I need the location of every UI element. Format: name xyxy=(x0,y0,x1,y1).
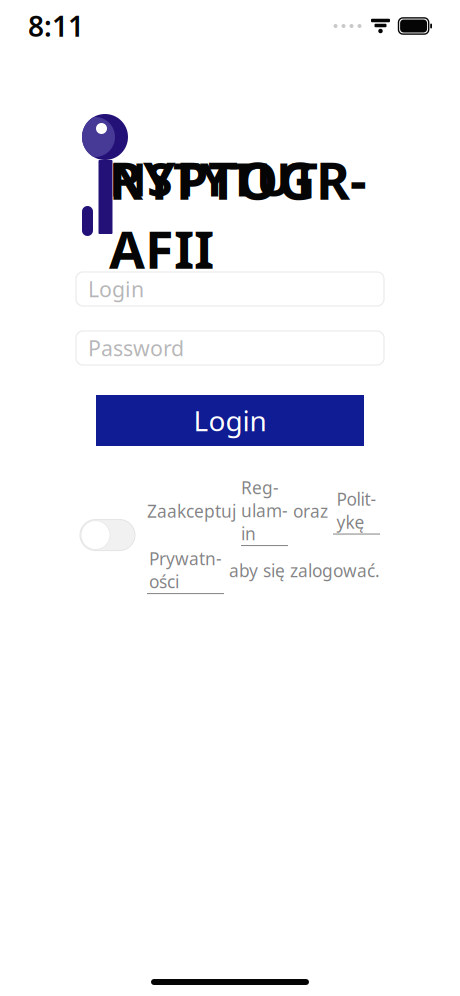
staticText: Password xyxy=(88,334,184,362)
staticText: Login xyxy=(88,275,144,303)
staticText: Login xyxy=(193,402,266,439)
staticText: Prywatności xyxy=(149,547,222,593)
staticText: aby się zalogować. xyxy=(224,559,380,582)
staticText: Politykę xyxy=(336,487,376,533)
staticText: 8:11 xyxy=(28,7,84,45)
staticText: oraz xyxy=(288,499,333,522)
button[interactable]: Prywatności xyxy=(147,547,224,594)
button[interactable]: Politykę xyxy=(333,487,380,534)
staticText: NSTYTUT xyxy=(109,147,318,209)
staticText: Zaakceptuj xyxy=(147,499,241,522)
button[interactable]: Login xyxy=(96,395,364,446)
staticText: Regulamin xyxy=(241,476,288,545)
button[interactable]: Regulamin xyxy=(241,476,288,546)
button[interactable]: Accept terms toggle xyxy=(80,519,135,550)
staticText: RYPTOGRAFII xyxy=(109,145,367,283)
